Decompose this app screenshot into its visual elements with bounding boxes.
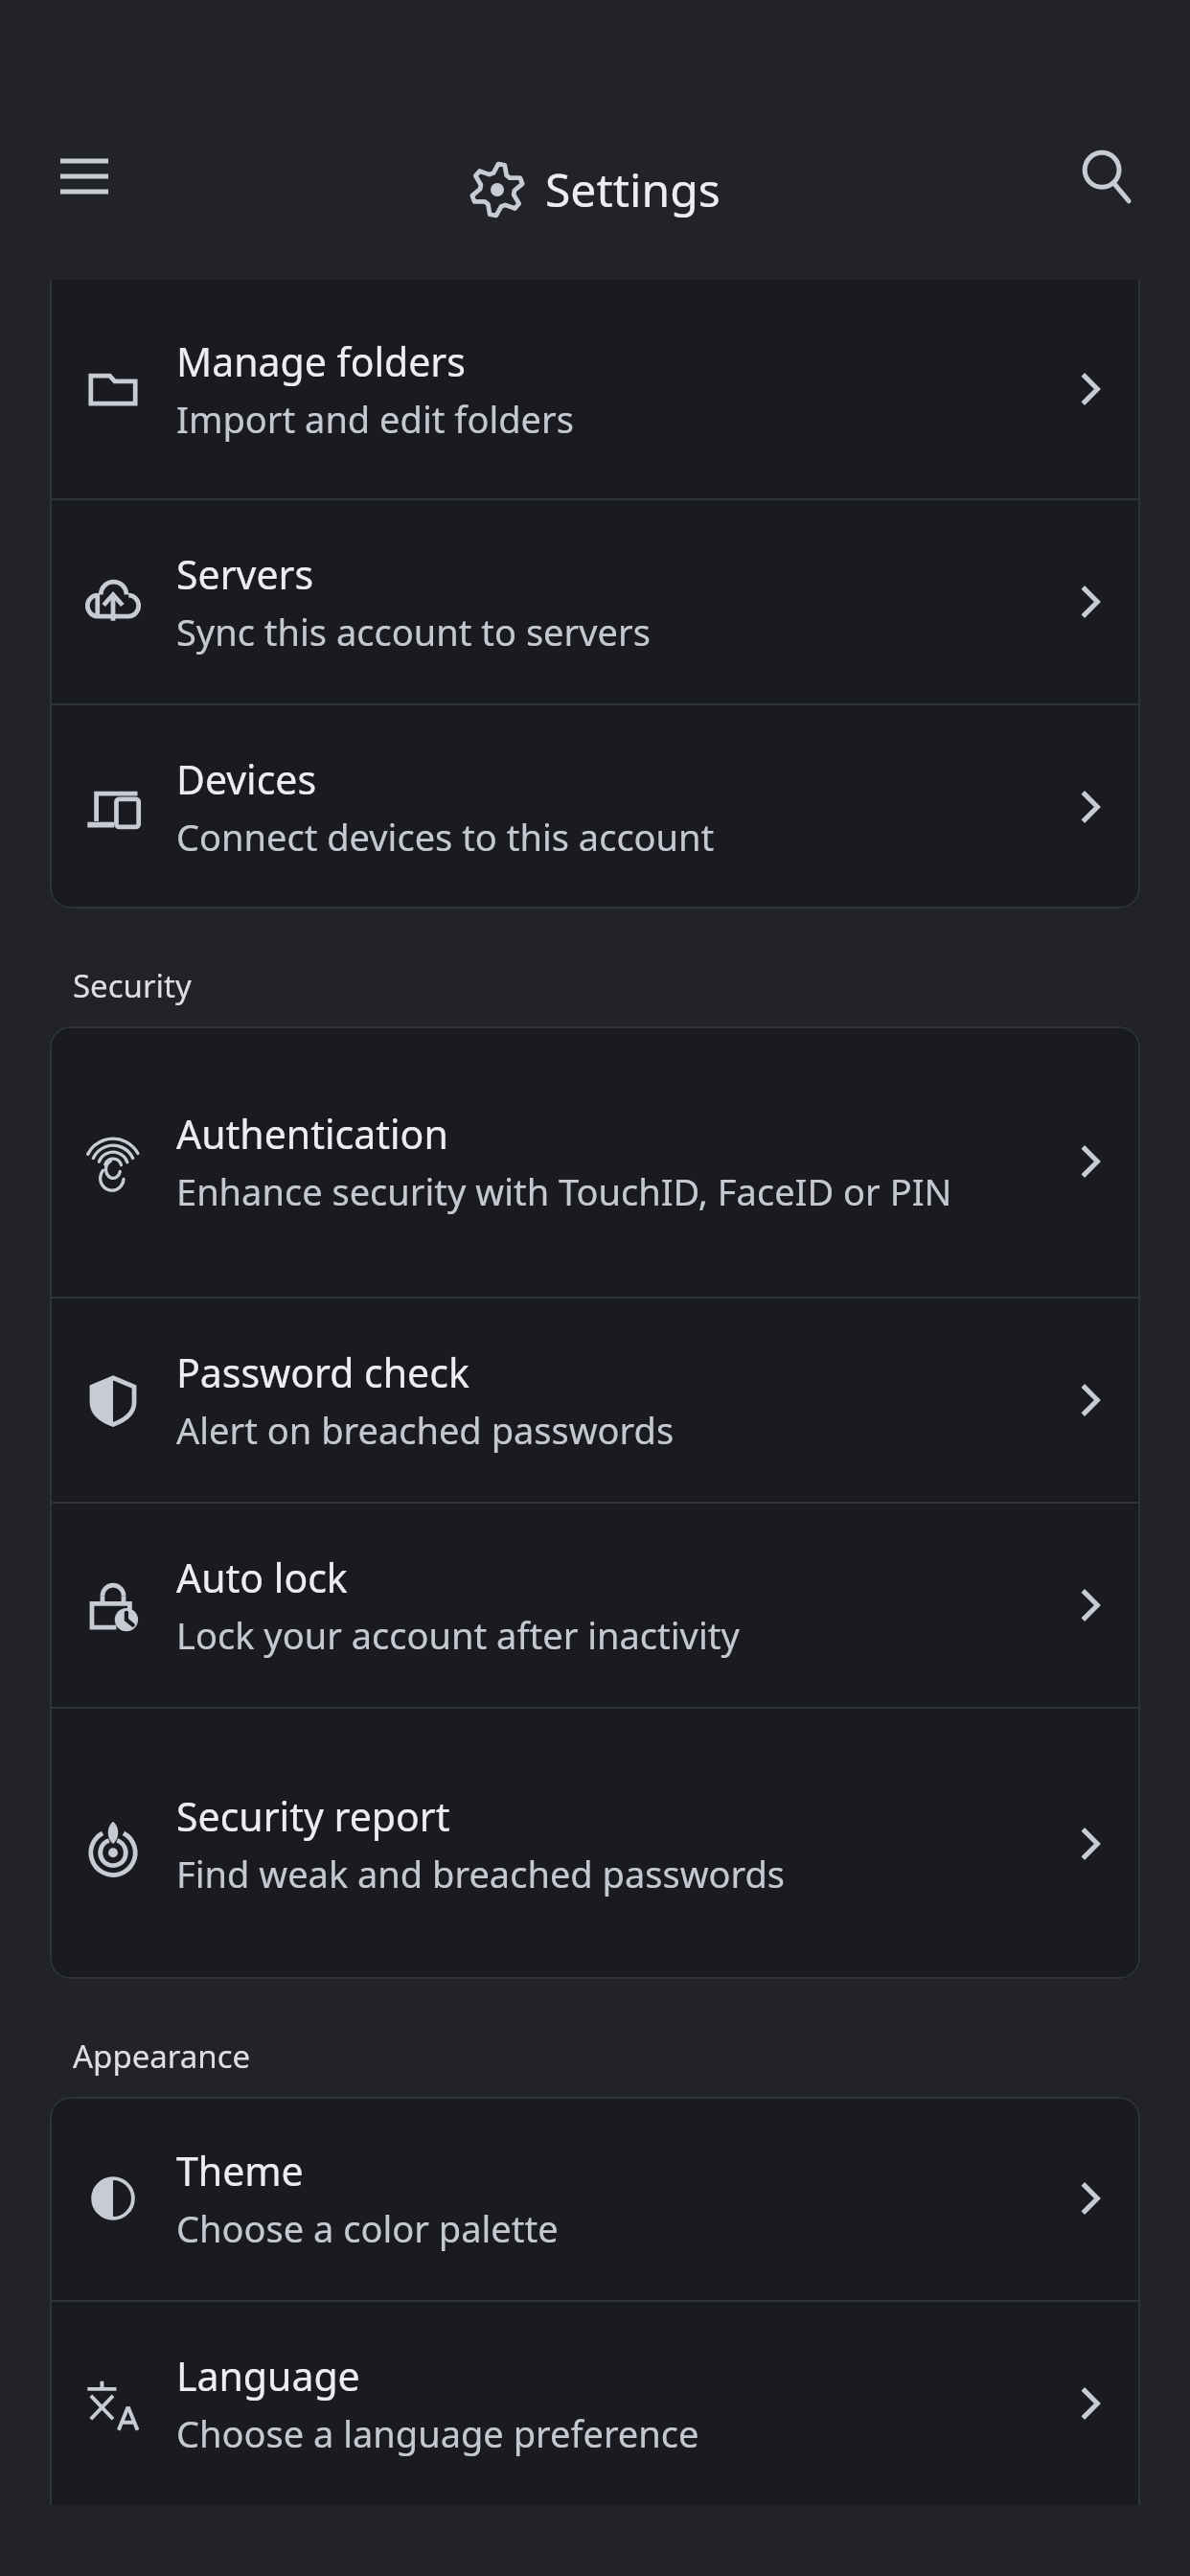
staticText: Security report — [176, 1789, 450, 1843]
button[interactable]: Theme — [50, 2097, 1140, 2300]
button[interactable]: Password check — [50, 1299, 1140, 1502]
staticText: Manage folders — [176, 334, 466, 388]
button[interactable]: Search — [1062, 132, 1150, 220]
button[interactable]: Auto lock — [50, 1504, 1140, 1707]
button[interactable]: Security report — [50, 1709, 1140, 1979]
button[interactable]: Manage folders — [50, 280, 1140, 498]
staticText: Servers — [176, 547, 314, 601]
staticText: Enhance security with TouchID, FaceID or… — [176, 1166, 952, 1216]
button[interactable]: Devices — [50, 705, 1140, 908]
staticText: Connect devices to this account — [176, 812, 715, 862]
staticText: Security — [73, 964, 192, 1007]
staticText: Password check — [176, 1345, 469, 1399]
staticText: Lock your account after inactivity — [176, 1610, 740, 1660]
button[interactable]: Authentication — [50, 1026, 1140, 1297]
staticText: Find weak and breached passwords — [176, 1849, 786, 1898]
staticText: Auto lock — [176, 1551, 348, 1604]
button[interactable]: Settings — [470, 158, 721, 220]
staticText: Choose a language preference — [176, 2408, 699, 2458]
staticText: Devices — [176, 752, 317, 806]
button[interactable]: Language — [50, 2302, 1140, 2505]
staticText: Settings — [545, 158, 721, 220]
staticText: Theme — [176, 2144, 304, 2197]
staticText: Import and edit folders — [176, 394, 574, 444]
staticText: Choose a color palette — [176, 2203, 559, 2253]
button[interactable]: Servers — [50, 500, 1140, 703]
staticText: Authentication — [176, 1107, 448, 1161]
button[interactable]: Menu — [40, 132, 128, 220]
staticText: Appearance — [73, 2035, 251, 2078]
staticText: Language — [176, 2349, 360, 2403]
staticText: Sync this account to servers — [176, 607, 651, 656]
staticText: Alert on breached passwords — [176, 1405, 675, 1455]
